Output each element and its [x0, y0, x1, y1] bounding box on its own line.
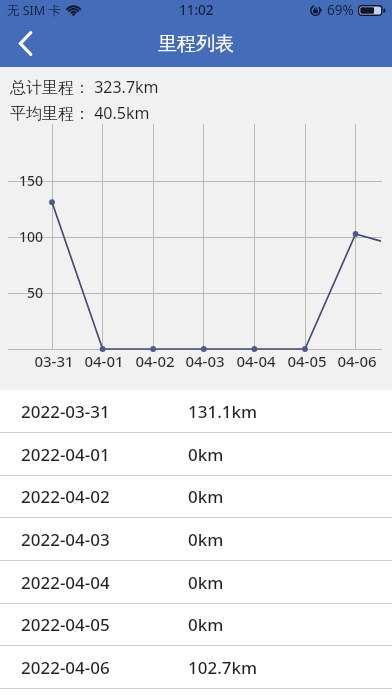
- staticText: 04-01: [80, 351, 128, 371]
- staticText: 100: [17, 227, 43, 246]
- staticText: 2022-04-01: [21, 443, 110, 466]
- staticText: 69%: [327, 1, 354, 19]
- staticText: 0km: [188, 443, 224, 466]
- button[interactable]: 2022-04-01: [0, 433, 392, 476]
- staticText: 2022-03-31: [21, 400, 110, 423]
- staticText: 2022-04-05: [21, 613, 110, 636]
- staticText: 无 SIM 卡: [7, 2, 61, 19]
- staticText: 0km: [188, 528, 224, 551]
- staticText: 131.1km: [188, 400, 258, 423]
- button[interactable]: 2022-04-04: [0, 561, 392, 604]
- staticText: 50: [17, 283, 43, 302]
- staticText: 04-04: [232, 351, 280, 371]
- staticText: 2022-04-02: [21, 485, 110, 508]
- staticText: 03-31: [30, 351, 78, 371]
- staticText: 150: [17, 171, 43, 190]
- staticText: 11:02: [179, 1, 214, 19]
- button[interactable]: 2022-03-31: [0, 390, 392, 433]
- button[interactable]: 2022-04-03: [0, 518, 392, 561]
- button[interactable]: 2022-04-06: [0, 646, 392, 689]
- staticText: 总计里程： 323.7km: [10, 76, 159, 98]
- staticText: 里程列表: [158, 32, 234, 56]
- button[interactable]: 2022-04-05: [0, 603, 392, 646]
- staticText: 0km: [188, 571, 224, 594]
- staticText: 0km: [188, 485, 224, 508]
- staticText: 2022-04-06: [21, 656, 110, 679]
- staticText: 102.7km: [188, 656, 258, 679]
- button[interactable]: 2022-04-02: [0, 475, 392, 518]
- button[interactable]: Back: [0, 20, 48, 67]
- staticText: 2022-04-03: [21, 528, 110, 551]
- staticText: 2022-04-04: [21, 571, 110, 594]
- staticText: 0km: [188, 613, 224, 636]
- staticText: 04-02: [131, 351, 179, 371]
- staticText: 平均里程： 40.5km: [10, 102, 150, 124]
- staticText: 04-06: [333, 351, 381, 371]
- staticText: 04-05: [283, 351, 331, 371]
- staticText: 04-03: [181, 351, 229, 371]
